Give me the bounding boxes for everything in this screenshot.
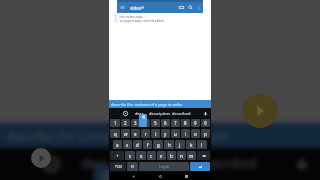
button[interactable]: w bbox=[121, 129, 130, 138]
button[interactable]: 3 bbox=[131, 119, 140, 127]
staticText: q bbox=[114, 131, 117, 137]
staticText: r bbox=[145, 131, 147, 137]
button[interactable]: Home bbox=[159, 175, 162, 178]
staticText: h bbox=[168, 142, 171, 148]
button[interactable]: v bbox=[157, 151, 166, 160]
button[interactable]: Keyboard settings bbox=[123, 111, 128, 116]
staticText: 4 bbox=[102, 165, 111, 180]
button[interactable]: 4 bbox=[141, 119, 150, 127]
button[interactable]: Backspace bbox=[197, 151, 210, 160]
staticText: g bbox=[157, 142, 160, 148]
button[interactable]: More options bbox=[197, 6, 201, 10]
button[interactable]: 1 bbox=[110, 119, 120, 127]
button[interactable]: m bbox=[187, 151, 196, 160]
staticText: 2. to support page contents edited bbox=[115, 19, 164, 23]
button[interactable]: n bbox=[177, 151, 186, 160]
staticText: 2 bbox=[124, 120, 127, 126]
button[interactable]: 2 bbox=[121, 119, 130, 127]
button[interactable]: i bbox=[181, 129, 190, 138]
staticText: 8 bbox=[184, 120, 187, 126]
button[interactable]: x bbox=[136, 151, 146, 160]
button[interactable]: described bbox=[199, 155, 257, 172]
staticText: 5 bbox=[154, 120, 157, 126]
button[interactable]: 0 bbox=[201, 119, 210, 127]
button[interactable]: Keyboard settings bbox=[43, 156, 59, 172]
button[interactable]: Play bbox=[31, 148, 51, 168]
button[interactable]: Voice input bbox=[295, 157, 309, 171]
staticText: b bbox=[170, 153, 173, 159]
button[interactable]: c bbox=[147, 151, 156, 160]
button[interactable]: l bbox=[197, 140, 207, 149]
button[interactable]: h bbox=[164, 140, 174, 149]
staticText: y bbox=[164, 131, 167, 137]
button[interactable]: a bbox=[113, 140, 122, 149]
button[interactable]: ?123 bbox=[110, 162, 126, 171]
button[interactable]: Recents bbox=[185, 175, 188, 178]
button[interactable]: e bbox=[131, 129, 140, 138]
staticText: l bbox=[201, 142, 203, 148]
staticText: p bbox=[204, 131, 207, 137]
staticText: w bbox=[124, 131, 128, 137]
staticText: describe the contents of a page in order bbox=[0, 128, 230, 144]
staticText: description bbox=[127, 155, 194, 172]
button[interactable]: Emoji bbox=[127, 162, 138, 171]
staticText: desc bbox=[135, 111, 144, 116]
staticText: u bbox=[174, 131, 177, 137]
staticText: English bbox=[159, 165, 170, 169]
staticText: 0 bbox=[204, 120, 207, 126]
staticText: z bbox=[129, 153, 132, 159]
button[interactable]: 6 bbox=[161, 119, 170, 127]
button[interactable]: b bbox=[167, 151, 176, 160]
button[interactable]: g bbox=[153, 140, 163, 149]
button[interactable]: r bbox=[141, 129, 150, 138]
button[interactable]: Search bbox=[188, 5, 193, 10]
button[interactable]: Shift bbox=[110, 151, 124, 160]
button[interactable]: k bbox=[186, 140, 196, 149]
button[interactable]: 8 bbox=[181, 119, 190, 127]
staticText: o bbox=[194, 131, 197, 137]
staticText: f bbox=[147, 142, 149, 148]
staticText: d bbox=[136, 142, 139, 148]
staticText: e bbox=[134, 131, 137, 137]
button[interactable]: Play video bbox=[243, 94, 277, 128]
staticText: m bbox=[189, 153, 194, 159]
staticText: 9 bbox=[194, 120, 197, 126]
button[interactable]: desc bbox=[135, 111, 144, 116]
staticText: i bbox=[185, 131, 187, 137]
staticText: video* bbox=[130, 5, 144, 11]
button[interactable]: description bbox=[127, 155, 194, 172]
button[interactable]: desc bbox=[81, 155, 108, 172]
button[interactable]: z bbox=[125, 151, 135, 160]
staticText: 1. text replace again bbox=[115, 15, 143, 19]
button[interactable]: u bbox=[171, 129, 180, 138]
button[interactable]: d bbox=[133, 140, 142, 149]
staticText: 7 bbox=[174, 120, 177, 126]
button[interactable]: Voice input bbox=[203, 111, 208, 116]
button[interactable]: j bbox=[175, 140, 185, 149]
staticText: k bbox=[190, 142, 193, 148]
staticText: a bbox=[116, 142, 119, 148]
button[interactable]: 7 bbox=[171, 119, 180, 127]
staticText: described bbox=[172, 111, 191, 116]
button[interactable]: f bbox=[143, 140, 152, 149]
button[interactable]: description bbox=[149, 111, 171, 116]
button[interactable]: Save bbox=[179, 5, 184, 10]
button[interactable]: 9 bbox=[191, 119, 200, 127]
button[interactable]: s bbox=[123, 140, 132, 149]
staticText: 4 bbox=[142, 114, 145, 121]
button[interactable]: Back bbox=[132, 175, 135, 178]
button[interactable]: Space bbox=[139, 162, 189, 171]
button[interactable]: q bbox=[110, 129, 120, 138]
button[interactable]: 5 bbox=[151, 119, 160, 127]
button[interactable]: described bbox=[172, 111, 191, 116]
button[interactable]: t bbox=[151, 129, 160, 138]
staticText: 6 bbox=[164, 120, 167, 126]
staticText: description bbox=[149, 111, 171, 116]
button[interactable]: p bbox=[201, 129, 210, 138]
button[interactable]: o bbox=[191, 129, 200, 138]
button[interactable]: Enter bbox=[190, 162, 210, 171]
button[interactable]: y bbox=[161, 129, 170, 138]
staticText: c bbox=[150, 153, 153, 159]
button[interactable]: Menu bbox=[120, 5, 125, 10]
